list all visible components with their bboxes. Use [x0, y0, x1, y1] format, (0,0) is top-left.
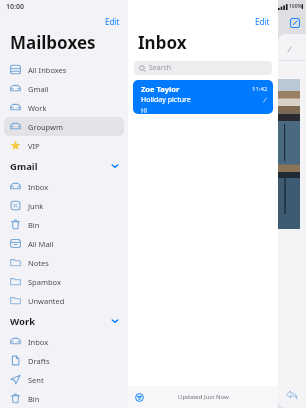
staticText: Gmail [28, 84, 49, 94]
staticText: Notes [28, 258, 49, 268]
button[interactable]: Sent [4, 370, 124, 389]
staticText: Spambox [28, 277, 61, 287]
staticText: Bin [28, 394, 40, 404]
button[interactable]: Edit [247, 14, 278, 28]
button[interactable]: Edit [97, 14, 128, 28]
button[interactable]: Gmail [0, 155, 128, 177]
button[interactable]: Unwanted [4, 291, 124, 310]
button[interactable]: Bin [4, 215, 124, 234]
staticText: Unwanted [28, 296, 65, 306]
staticText: Work [28, 103, 47, 113]
staticText: Inbox [138, 31, 187, 54]
staticText: Mailboxes [10, 31, 96, 54]
button[interactable]: Gmail [4, 79, 124, 98]
staticText: Updated Just Now [178, 393, 229, 401]
staticText: 10:00 [6, 2, 24, 12]
staticText: All Inboxes [28, 65, 67, 75]
button[interactable]: Work [4, 98, 124, 117]
staticText: Groupwm [28, 122, 63, 132]
button[interactable]: Junk [4, 196, 124, 215]
staticText: Search [149, 63, 172, 73]
button[interactable]: Spambox [4, 272, 124, 291]
button[interactable]: All Inboxes [4, 60, 124, 79]
button[interactable]: Filter [132, 390, 147, 405]
staticText: Gmail [10, 160, 38, 173]
button[interactable]: Zoe Taylor [133, 80, 273, 114]
button[interactable]: VIP [4, 136, 124, 155]
staticText: Inbox [28, 337, 49, 347]
staticText: Edit [255, 16, 270, 26]
staticText: Work [10, 315, 36, 328]
staticText: Zoe Taylor [141, 84, 252, 94]
button[interactable]: Work [0, 310, 128, 332]
button[interactable]: Reply [284, 387, 299, 402]
button[interactable]: All Mail [4, 234, 124, 253]
button[interactable]: Inbox [4, 332, 124, 351]
staticText: Edit [105, 16, 120, 26]
other: Attachment [262, 97, 268, 103]
button[interactable]: Compose [288, 16, 302, 30]
staticText: Bin [28, 220, 40, 230]
staticText: Hi [141, 106, 148, 114]
button[interactable]: Bin [4, 389, 124, 408]
staticText: 11:42 [252, 85, 268, 93]
staticText: Junk [28, 201, 44, 211]
button[interactable]: Groupwm [4, 117, 124, 136]
staticText: Holiday picture [141, 95, 262, 105]
staticText: Sent [28, 375, 44, 385]
staticText: Drafts [28, 356, 50, 366]
button[interactable]: Notes [4, 253, 124, 272]
button[interactable]: Inbox [4, 177, 124, 196]
staticText: Inbox [28, 182, 49, 192]
staticText: 100% [289, 3, 302, 10]
staticText: All Mail [28, 239, 54, 249]
staticText: VIP [28, 141, 40, 151]
button[interactable]: Drafts [4, 351, 124, 370]
button[interactable]: Search [134, 61, 272, 75]
